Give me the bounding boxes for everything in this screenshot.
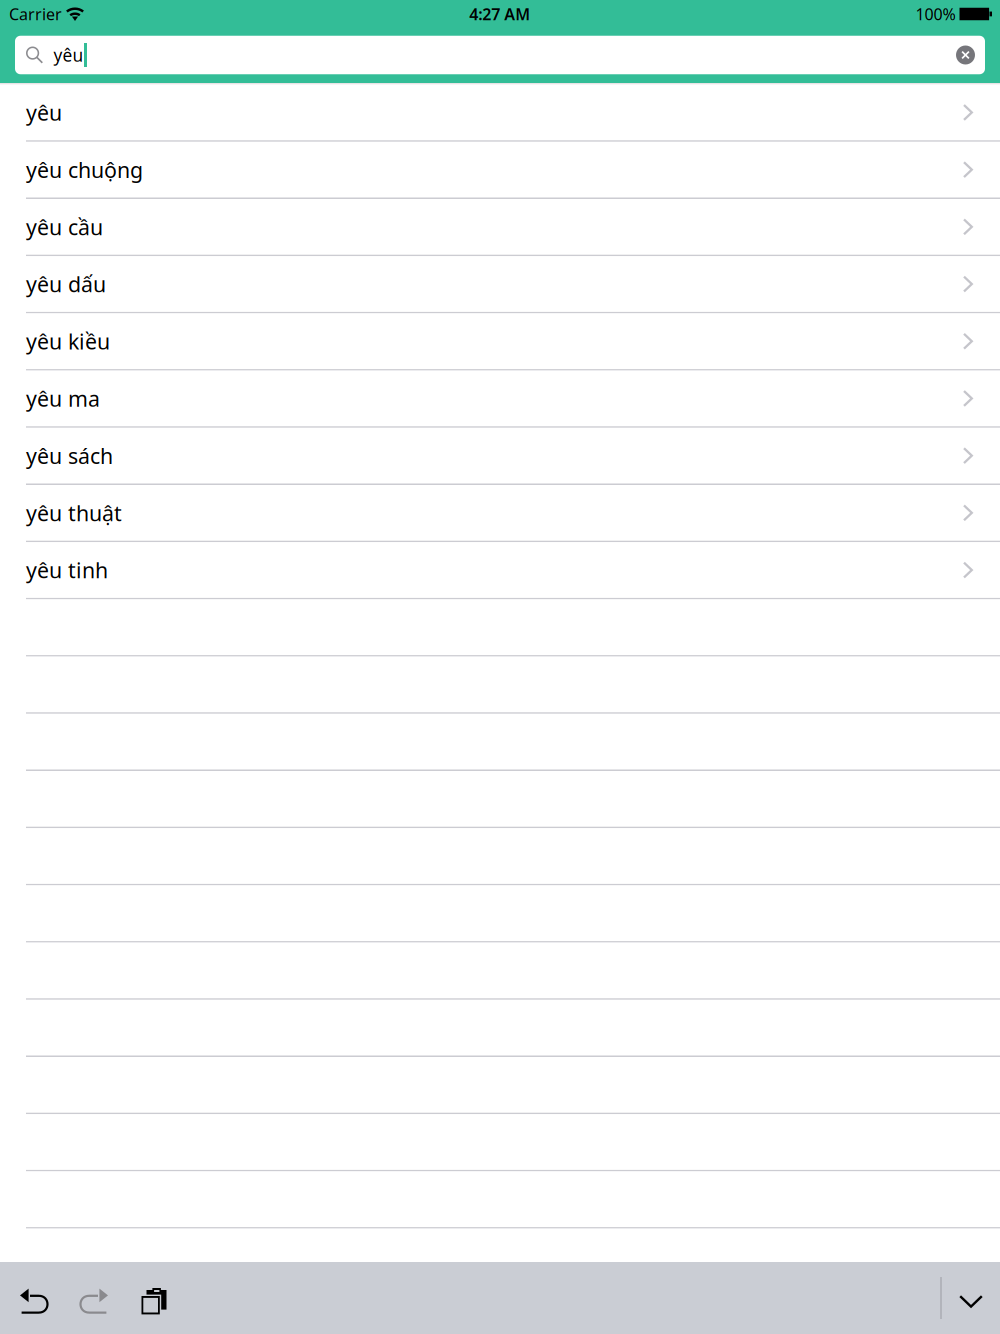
button[interactable]: yêu chuộng — [0, 142, 1000, 199]
button[interactable]: Clear text — [946, 36, 985, 74]
button[interactable]: yêu dấu — [0, 256, 1000, 313]
button[interactable]: Paste — [124, 1262, 184, 1334]
staticText: 4:27 AM — [469, 3, 530, 25]
staticText: yêu tinh — [26, 556, 108, 584]
button[interactable]: yêu tinh — [0, 542, 1000, 599]
button[interactable]: yêu — [15, 36, 946, 74]
staticText: Carrier — [9, 3, 62, 25]
button[interactable]: yêu cầu — [0, 199, 1000, 256]
staticText: yêu — [26, 98, 62, 127]
button[interactable]: yêu kiều — [0, 313, 1000, 371]
staticText: 100% — [915, 3, 955, 25]
button[interactable]: Redo — [64, 1262, 124, 1334]
button[interactable]: yêu — [0, 85, 1000, 142]
staticText: yêu chuộng — [26, 155, 143, 184]
staticText: yêu — [53, 43, 83, 66]
button[interactable]: yêu sách — [0, 428, 1000, 485]
staticText: yêu sách — [26, 441, 113, 470]
staticText: yêu kiều — [26, 327, 110, 355]
button[interactable]: Hide keyboard — [942, 1262, 1000, 1334]
staticText: yêu dấu — [26, 270, 106, 298]
button[interactable]: yêu ma — [0, 371, 1000, 428]
button[interactable]: yêu thuật — [0, 485, 1000, 542]
button[interactable]: Undo — [4, 1262, 64, 1334]
staticText: yêu cầu — [26, 213, 103, 241]
staticText: yêu ma — [26, 384, 100, 413]
staticText: yêu thuật — [26, 499, 122, 527]
